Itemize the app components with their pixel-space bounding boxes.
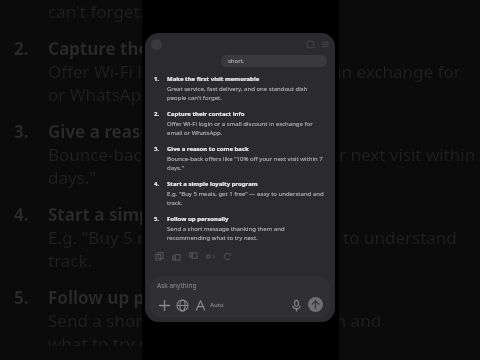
staticText: Send a short message thanking them and r…	[48, 309, 480, 332]
staticText: 2.	[154, 110, 167, 118]
button[interactable]: Ask anything	[157, 281, 323, 290]
staticText: 1.	[154, 75, 167, 83]
staticText: 3.	[154, 145, 167, 153]
staticText: or WhatsApp.	[48, 83, 157, 106]
staticText: 4.	[154, 180, 167, 188]
staticText: Offer Wi-Fi login or a small discount in…	[48, 60, 480, 83]
button[interactable]: Good response	[171, 251, 181, 261]
button[interactable]: Send	[308, 297, 323, 312]
staticText: Bounce-back offers like "10% off your ne…	[48, 143, 480, 166]
staticText: Make the first visit memorable	[167, 75, 260, 83]
staticText: can't forget.	[48, 0, 145, 23]
staticText: Give a reason to come back	[48, 120, 280, 143]
button[interactable]: short.	[221, 55, 327, 67]
button[interactable]: Read aloud	[205, 251, 215, 261]
staticText: 3.	[14, 120, 29, 143]
staticText: Give a reason to come back	[167, 145, 249, 153]
staticText: 4.	[14, 203, 29, 226]
button[interactable]: Dictate	[289, 298, 303, 312]
staticText: Start a simple loyalty program	[167, 180, 258, 188]
button[interactable]: Auto	[210, 301, 224, 309]
staticText: Start a simple loyalty program	[48, 203, 305, 226]
button[interactable]: Add	[157, 298, 171, 312]
staticText: days."	[48, 166, 97, 189]
staticText: what to try next.	[48, 332, 179, 346]
button[interactable]: Regenerate	[222, 251, 232, 261]
staticText: Send a short message thanking them and r…	[167, 225, 326, 242]
button[interactable]: Account	[151, 39, 162, 50]
staticText: Capture their contact info	[48, 37, 268, 60]
staticText: Follow up personally	[167, 215, 229, 223]
staticText: short.	[228, 57, 245, 65]
staticText: Capture their contact info	[167, 110, 245, 118]
button[interactable]: Copy	[154, 251, 164, 261]
button[interactable]: Web search	[175, 298, 189, 312]
staticText: Great service, fast delivery, and one st…	[167, 85, 326, 102]
staticText: Follow up personally	[48, 286, 223, 309]
button[interactable]: New chat	[306, 40, 315, 49]
staticText: Offer Wi-Fi login or a small discount in…	[167, 120, 326, 137]
staticText: 2.	[14, 37, 29, 60]
button[interactable]: Menu	[321, 40, 330, 49]
staticText: Bounce-back offers like "10% off your ne…	[167, 155, 326, 172]
staticText: Ask anything	[157, 281, 197, 290]
staticText: 5.	[154, 215, 167, 223]
staticText: E.g. "Buy 5 meals, get 1 free" — easy to…	[167, 190, 326, 207]
staticText: 5.	[14, 286, 29, 309]
staticText: Auto	[210, 301, 224, 309]
button[interactable]: Bad response	[188, 251, 198, 261]
button[interactable]: Style	[193, 298, 207, 312]
staticText: E.g. "Buy 5 meals, get 1 free" — easy to…	[48, 226, 480, 249]
staticText: track.	[48, 249, 93, 272]
